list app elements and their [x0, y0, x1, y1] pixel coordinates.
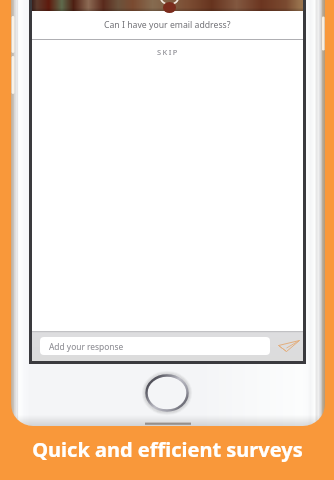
button[interactable]: Send	[272, 331, 306, 361]
button[interactable]: SKIP	[32, 40, 303, 63]
staticText: SKIP	[157, 47, 179, 57]
staticText: Add your response	[49, 341, 124, 352]
staticText: Quick and efficient surveys	[32, 436, 303, 463]
button[interactable]: Add your response	[40, 337, 270, 355]
staticText: Can I have your email address?	[104, 19, 231, 31]
